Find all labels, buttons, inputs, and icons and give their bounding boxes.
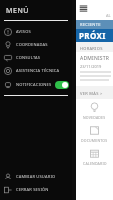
button[interactable]: PRÓXIMA bbox=[76, 29, 113, 42]
button[interactable]: ASISTENCIA TÉCNICA bbox=[0, 64, 72, 77]
button[interactable]: DOCUMENTOS bbox=[76, 122, 113, 145]
button[interactable]: CERRAR SESIÓN bbox=[0, 183, 72, 196]
staticText: ASISTENCIA TÉCNICA bbox=[16, 68, 60, 73]
button[interactable]: AVISOS bbox=[0, 25, 72, 38]
staticText: RECIENTE bbox=[80, 22, 101, 27]
button[interactable]: CALENDARIO bbox=[76, 145, 113, 168]
staticText: HORARIOS bbox=[80, 46, 103, 51]
staticText: CAMBIAR USUARIO bbox=[16, 174, 56, 179]
staticText: MENÚ bbox=[6, 6, 30, 16]
staticText: AVISOS bbox=[16, 29, 31, 34]
button[interactable]: CONSULTAS bbox=[0, 51, 72, 64]
staticText: NOTIFICACIONES bbox=[16, 82, 55, 87]
staticText: CONSULTAS bbox=[16, 55, 41, 60]
button[interactable]: ADMINISTRACI bbox=[76, 52, 113, 86]
button[interactable]: CAMBIAR USUARIO bbox=[0, 170, 72, 183]
staticText: ADMINISTRACI bbox=[80, 55, 111, 62]
staticText: NOVEDADES bbox=[83, 115, 106, 120]
staticText: CERRAR SESIÓN bbox=[16, 187, 49, 192]
staticText: DOCUMENTOS bbox=[81, 138, 108, 143]
staticText: AL bbox=[106, 13, 111, 18]
button[interactable]: VER MÁS > bbox=[80, 91, 103, 96]
button[interactable]: COORDENADAS bbox=[0, 38, 72, 51]
button[interactable]: NOTIFICACIONES bbox=[0, 77, 72, 92]
button[interactable]: Notificaciones activadas bbox=[55, 81, 69, 89]
button[interactable]: NOVEDADES bbox=[76, 99, 113, 122]
staticText: CALENDARIO bbox=[83, 161, 107, 166]
staticText: PRÓXIMA bbox=[79, 30, 113, 41]
button[interactable]: Abrir menú bbox=[79, 4, 88, 13]
staticText: COORDENADAS bbox=[16, 42, 48, 47]
staticText: 23/11/2019 bbox=[80, 64, 102, 69]
